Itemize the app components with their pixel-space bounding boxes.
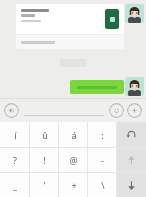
button[interactable] xyxy=(70,80,124,94)
button[interactable]: ? xyxy=(0,148,30,172)
button[interactable]: Voice message xyxy=(4,103,19,118)
staticText: - xyxy=(101,154,104,166)
button[interactable]: Profile photo xyxy=(125,4,144,23)
button[interactable]: û xyxy=(30,122,59,147)
button[interactable]: Enter xyxy=(117,173,146,197)
button[interactable]: : xyxy=(88,122,117,147)
button[interactable]: í xyxy=(0,122,30,147)
staticText: \ xyxy=(101,179,105,191)
staticText: ? xyxy=(13,154,17,166)
button[interactable] xyxy=(16,4,124,49)
button[interactable]: Return xyxy=(117,122,146,147)
button[interactable]: Add attachment xyxy=(127,103,142,118)
button[interactable]: ! xyxy=(30,148,59,172)
staticText: + xyxy=(71,179,77,191)
button[interactable]: \ xyxy=(88,173,117,197)
button[interactable]: _ xyxy=(0,173,30,197)
staticText: í xyxy=(14,129,17,141)
button[interactable] xyxy=(24,104,104,116)
button[interactable]: ' xyxy=(30,173,59,197)
button[interactable]: Profile photo xyxy=(125,77,144,96)
staticText: : xyxy=(101,129,104,141)
button[interactable]: - xyxy=(88,148,117,172)
staticText: ! xyxy=(43,154,46,166)
staticText: ' xyxy=(43,179,46,191)
button[interactable]: Shift xyxy=(117,148,146,172)
staticText: á xyxy=(71,129,77,141)
button[interactable]: + xyxy=(59,173,88,197)
button[interactable]: @ xyxy=(59,148,88,172)
staticText: û xyxy=(42,129,48,141)
button[interactable]: á xyxy=(59,122,88,147)
staticText: @ xyxy=(69,154,78,166)
button[interactable]: Emoji xyxy=(109,103,124,118)
staticText: _ xyxy=(13,179,17,191)
